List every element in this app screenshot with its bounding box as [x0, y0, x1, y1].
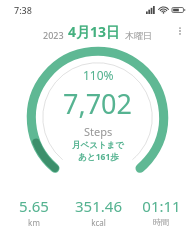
staticText: 2023 — [43, 29, 64, 41]
staticText: 7:38 — [14, 4, 32, 16]
staticText: 月ベストまで — [72, 140, 124, 151]
staticText: 時間 — [153, 217, 169, 226]
button[interactable]: 110% — [25, 45, 170, 190]
staticText: km — [28, 217, 40, 226]
staticText: あと161歩 — [78, 151, 119, 163]
staticText: 5.65 — [19, 196, 49, 216]
button[interactable]: More options — [170, 21, 190, 41]
button[interactable]: 01:11 — [130, 193, 192, 229]
staticText: Steps — [84, 124, 113, 139]
staticText: 351.46 — [75, 196, 122, 216]
staticText: 4月13日 — [68, 22, 121, 41]
staticText: 01:11 — [142, 196, 181, 216]
staticText: kcal — [91, 217, 106, 226]
button[interactable]: 5.65 — [3, 193, 65, 229]
staticText: 7,702 — [63, 85, 133, 122]
staticText: 木曜日 — [125, 30, 152, 41]
staticText: 110% — [83, 67, 114, 83]
button[interactable]: 351.46 — [67, 193, 129, 229]
